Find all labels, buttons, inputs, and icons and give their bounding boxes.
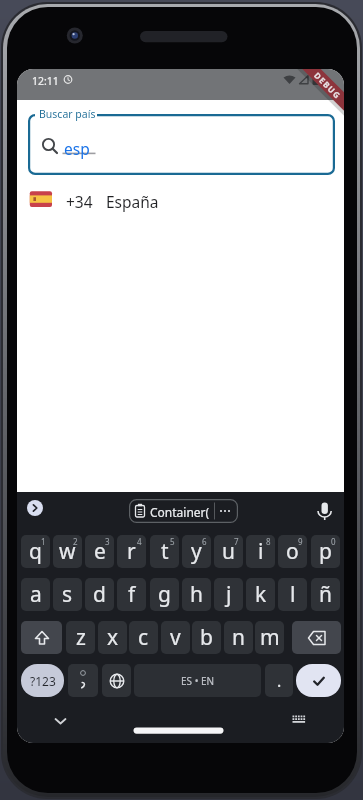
button[interactable]: p [311,535,340,568]
staticText: q [29,537,42,566]
button[interactable] [27,500,43,516]
staticText: esp [64,138,90,159]
button[interactable]: j [214,578,243,611]
staticText: j [226,580,232,609]
staticText: f [128,580,136,609]
staticText: +34 [66,191,93,212]
staticText: 8 [266,536,271,547]
button[interactable]: x [98,621,127,654]
button[interactable]: ?123 [21,664,64,697]
staticText: n [232,623,245,652]
staticText: d [93,580,106,609]
button[interactable] [17,184,344,214]
staticText: r [127,537,136,566]
staticText: 6 [202,536,207,547]
button[interactable] [129,499,238,523]
button[interactable] [102,664,131,697]
staticText: l [290,580,296,609]
staticText: e [94,537,106,566]
staticText: w [59,537,76,566]
staticText: k [255,580,267,609]
staticText: DEBUG [312,70,344,101]
staticText: m [260,623,280,652]
button[interactable]: d [85,578,114,611]
button[interactable] [28,114,335,175]
button[interactable]: z [66,621,95,654]
button[interactable]: a [21,578,50,611]
staticText: 5 [170,536,175,547]
staticText: h [190,580,203,609]
button[interactable] [314,497,335,525]
button[interactable]: w [53,535,82,568]
button[interactable]: o [278,535,307,568]
staticText: 4 [137,536,142,547]
staticText: b [200,623,213,652]
button[interactable]: n [224,621,253,654]
button[interactable]: c [129,621,158,654]
button[interactable]: q [21,535,50,568]
button[interactable]: g [150,578,179,611]
button[interactable]: f [117,578,146,611]
button[interactable]: m [255,621,284,654]
button[interactable]: e [85,535,114,568]
button[interactable]: ES • EN [134,664,261,697]
button[interactable] [50,710,71,728]
button[interactable]: b [192,621,221,654]
button[interactable]: u [214,535,243,568]
staticText: 0 [331,536,336,547]
button[interactable]: l [278,578,307,611]
staticText: Container( [150,504,210,520]
staticText: c [138,623,149,652]
button[interactable]: . [265,664,293,697]
staticText: España [106,191,159,212]
button[interactable]: v [161,621,190,654]
button[interactable]: i [246,535,275,568]
staticText: x [107,623,119,652]
staticText: v [170,623,181,652]
staticText: p [319,537,332,566]
staticText: . [277,670,282,692]
staticText: i [258,537,264,566]
staticText: ES • EN [181,674,215,688]
staticText: y [191,537,202,566]
staticText: 9 [298,536,303,547]
button[interactable] [129,722,228,739]
button[interactable] [288,710,310,728]
button[interactable]: r [117,535,146,568]
staticText: 12:11 [32,74,59,88]
button[interactable]: t [150,535,179,568]
staticText: s [62,580,73,609]
button[interactable]: k [246,578,275,611]
button[interactable]: y [182,535,211,568]
staticText: ñ [319,580,332,609]
staticText: t [161,537,169,566]
button[interactable]: s [53,578,82,611]
staticText: o [286,537,299,566]
button[interactable] [296,664,341,697]
staticText: a [30,580,42,609]
staticText: 1 [41,536,46,547]
staticText: Buscar país [39,107,96,121]
button[interactable]: h [182,578,211,611]
button[interactable] [292,621,341,654]
staticText: ?123 [30,673,56,689]
staticText: 2 [73,536,78,547]
button[interactable] [21,621,62,654]
staticText: 3 [105,536,110,547]
button[interactable] [68,664,98,697]
staticText: 7 [234,536,239,547]
button[interactable]: ñ [311,578,340,611]
staticText: u [222,537,235,566]
staticText: z [76,623,86,652]
staticText: g [158,580,171,609]
